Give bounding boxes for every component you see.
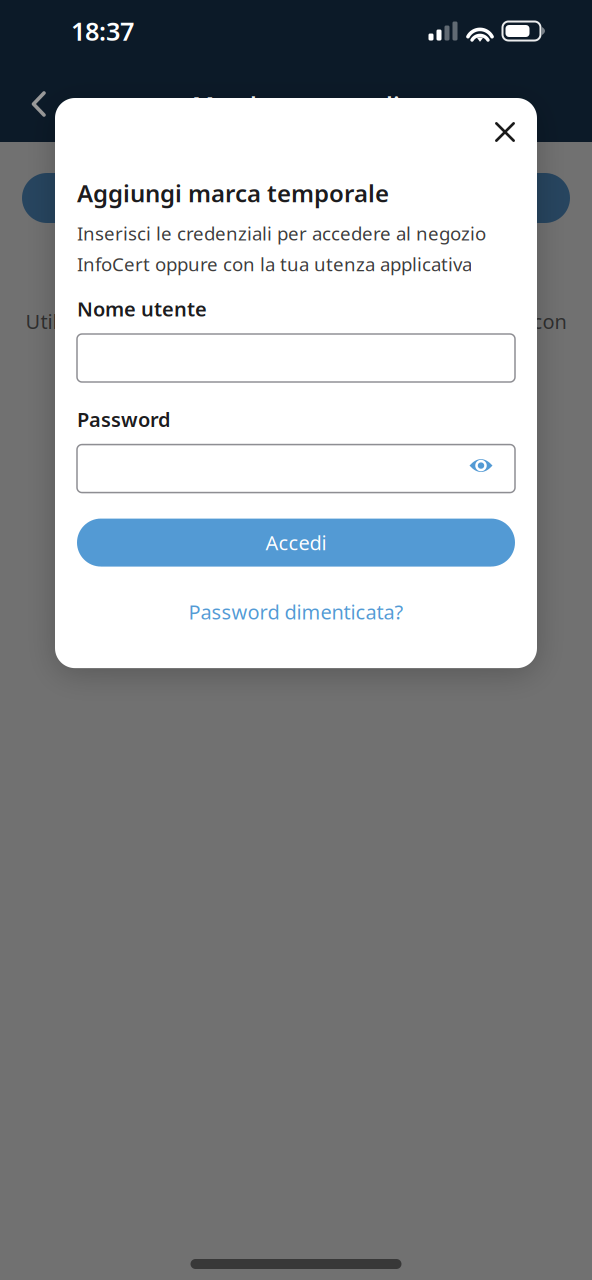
- staticText: Aggiungi marca temporale: [77, 177, 389, 209]
- staticText: Password: [77, 406, 171, 433]
- staticText: Nome utente: [77, 295, 207, 322]
- button[interactable]: Back: [0, 75, 63, 129]
- button[interactable]: [0, 173, 592, 223]
- staticText: Accedi: [265, 529, 326, 556]
- staticText: Utilizzate 0 marche temporali su 0 dispo…: [25, 308, 566, 335]
- button[interactable]: Close: [486, 113, 524, 151]
- button[interactable]: Show password: [469, 460, 515, 477]
- button[interactable]: Password dimenticata?: [77, 591, 515, 633]
- staticText: Password dimenticata?: [188, 599, 403, 625]
- button[interactable]: Accedi: [77, 519, 515, 567]
- staticText: 18:37: [71, 14, 134, 48]
- staticText: Marche temporali: [192, 89, 400, 121]
- staticText: Inserisci le credenziali per accedere al…: [77, 221, 486, 276]
